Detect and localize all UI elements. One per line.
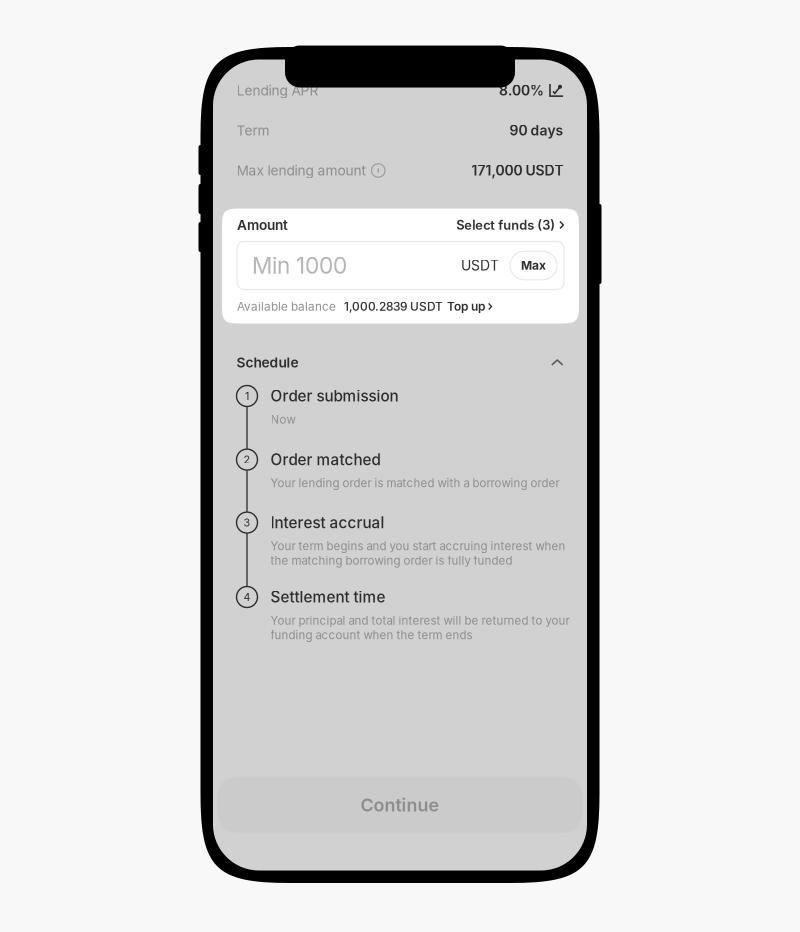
staticText: 2 bbox=[243, 453, 250, 466]
button[interactable]: Max bbox=[510, 251, 557, 280]
button[interactable]: Continue bbox=[217, 776, 583, 833]
staticText: 90 days bbox=[509, 122, 563, 139]
staticText: 1,000.2839 USDT bbox=[344, 299, 443, 314]
staticText: Order submission bbox=[270, 387, 398, 405]
staticText: Select funds (3) bbox=[456, 217, 555, 233]
button[interactable]: Select funds (3) bbox=[456, 214, 564, 236]
staticText: Interest accrual bbox=[270, 513, 384, 532]
staticText: Amount bbox=[237, 217, 288, 233]
staticText: 8.00% bbox=[499, 82, 544, 99]
staticText: Settlement time bbox=[270, 588, 385, 606]
button[interactable]: Top up bbox=[447, 295, 492, 318]
staticText: Now bbox=[270, 413, 295, 426]
button[interactable]: Schedule bbox=[213, 339, 587, 385]
staticText: Max bbox=[521, 258, 546, 273]
staticText: USDT bbox=[461, 257, 499, 274]
staticText: Min 1000 bbox=[252, 252, 347, 279]
staticText: 4 bbox=[243, 590, 250, 603]
staticText: Top up bbox=[447, 299, 485, 314]
staticText: Your lending order is matched with a bor… bbox=[270, 476, 559, 490]
staticText: Max lending amount bbox=[236, 162, 365, 179]
staticText: Your term begins and you start accruing … bbox=[270, 539, 565, 553]
staticText: Schedule bbox=[236, 354, 298, 371]
staticText: the matching borrowing order is fully fu… bbox=[270, 554, 512, 568]
staticText: Available balance bbox=[237, 299, 336, 313]
staticText: funding account when the term ends bbox=[270, 628, 472, 642]
staticText: Your principal and total interest will b… bbox=[270, 614, 569, 627]
staticText: 3 bbox=[243, 516, 250, 529]
staticText: Continue bbox=[360, 794, 439, 816]
staticText: Lending APR bbox=[236, 82, 318, 99]
staticText: Term bbox=[236, 122, 269, 139]
staticText: 171,000 USDT bbox=[471, 162, 563, 179]
staticText: 1 bbox=[245, 389, 249, 402]
staticText: Order matched bbox=[270, 450, 380, 469]
